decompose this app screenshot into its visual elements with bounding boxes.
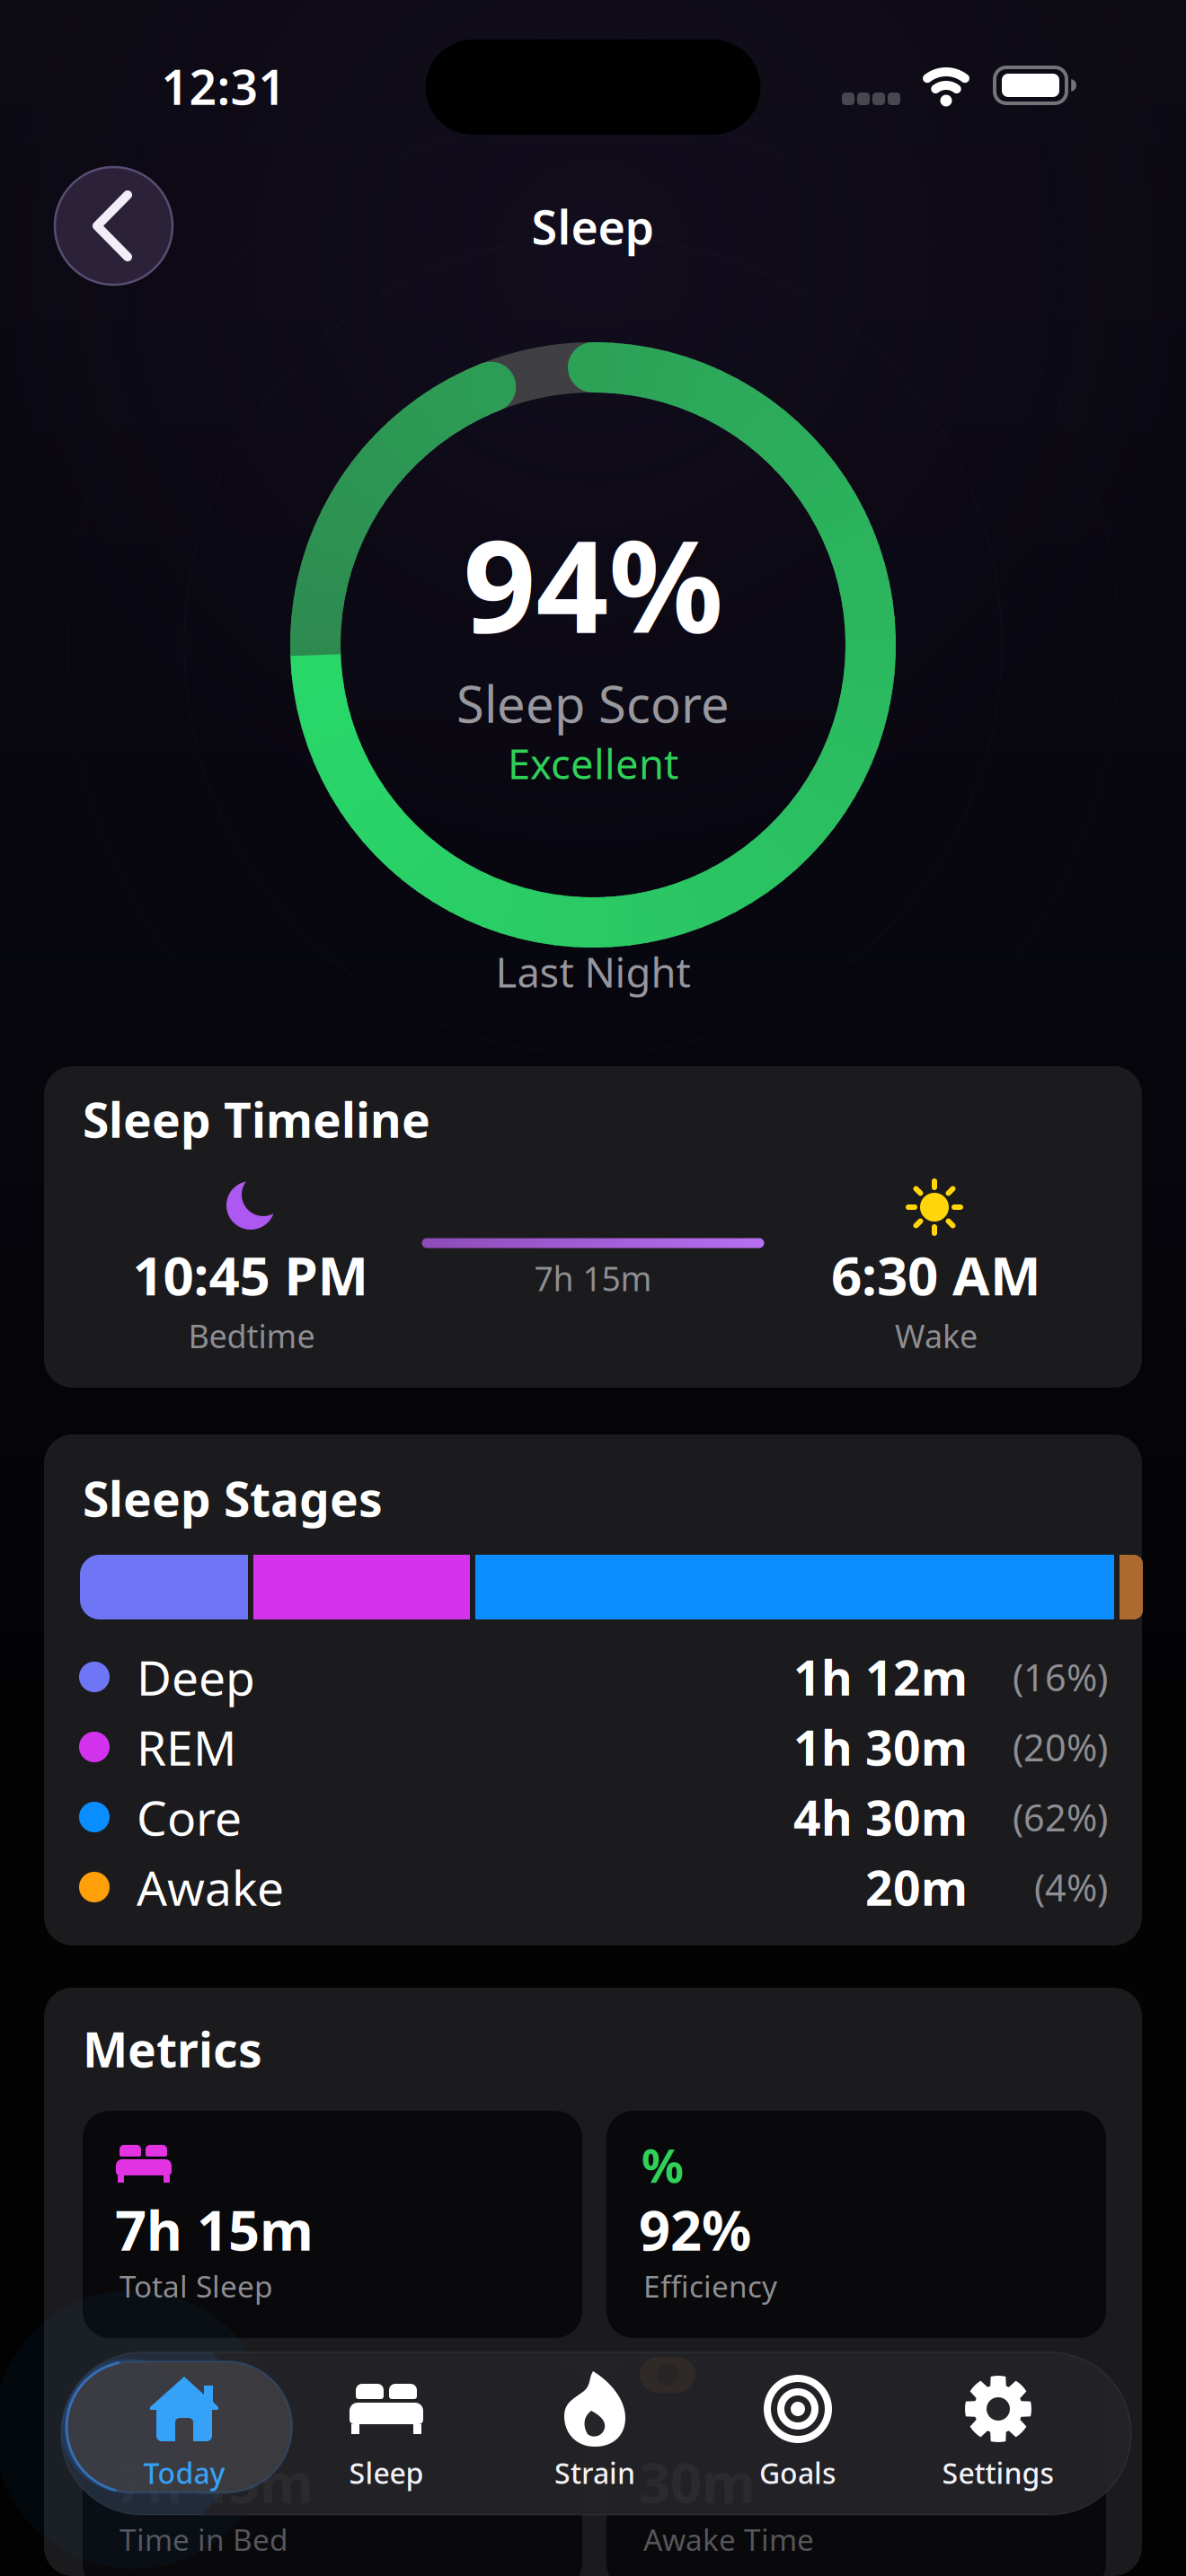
staticText: 94% xyxy=(463,500,723,668)
staticText: Time in Bed xyxy=(119,2519,288,2559)
staticText: Sleep Score xyxy=(456,670,730,737)
staticText: Today xyxy=(143,2454,225,2492)
staticText: 6:30 AM xyxy=(831,1239,1041,1310)
staticText: Metrics xyxy=(83,2017,262,2081)
staticText: 1h 30m xyxy=(793,1715,968,1779)
staticText: Excellent xyxy=(508,736,678,790)
button[interactable]: Back xyxy=(0,0,1186,2576)
staticText: Awake Time xyxy=(643,2519,814,2559)
button[interactable]: Goals xyxy=(0,0,1186,2576)
staticText: Deep xyxy=(137,1645,255,1709)
staticText: (16%) xyxy=(1013,1652,1108,1702)
staticText: Sleep Timeline xyxy=(83,1087,430,1151)
staticText: Bedtime xyxy=(188,1314,315,1357)
staticText: Last Night xyxy=(496,945,690,999)
staticText: Wake xyxy=(895,1314,978,1357)
staticText: 10:45 PM xyxy=(133,1239,369,1310)
staticText: 20m xyxy=(865,1855,968,1919)
staticText: 92% xyxy=(639,2193,751,2266)
staticText: (20%) xyxy=(1013,1722,1108,1772)
button[interactable]: Today xyxy=(0,0,1186,2576)
button[interactable]: Settings xyxy=(0,0,1186,2576)
staticText: Core xyxy=(137,1785,242,1849)
staticText: 7h 15m xyxy=(115,2193,314,2266)
staticText: Sleep xyxy=(349,2454,424,2492)
button[interactable]: Strain xyxy=(0,0,1186,2576)
staticText: REM xyxy=(137,1715,236,1779)
staticText: % xyxy=(642,2134,684,2196)
staticText: 4h 30m xyxy=(793,1785,968,1849)
button[interactable]: Sleep xyxy=(0,0,1186,2576)
staticText: Strain xyxy=(554,2454,635,2492)
staticText: (4%) xyxy=(1034,1862,1108,1912)
staticText: Goals xyxy=(759,2454,836,2492)
staticText: 7h 15m xyxy=(534,1256,652,1300)
staticText: Total Sleep xyxy=(119,2266,273,2306)
staticText: Sleep xyxy=(531,195,655,257)
staticText: Awake xyxy=(137,1855,284,1919)
staticText: 12:31 xyxy=(161,54,286,118)
staticText: (62%) xyxy=(1013,1792,1108,1842)
staticText: Sleep Stages xyxy=(83,1466,383,1530)
staticText: 1h 12m xyxy=(793,1645,968,1709)
staticText: Efficiency xyxy=(643,2266,777,2306)
staticText: 30m xyxy=(639,2445,756,2518)
staticText: 7h 45m xyxy=(115,2445,314,2518)
staticText: Settings xyxy=(942,2454,1054,2492)
